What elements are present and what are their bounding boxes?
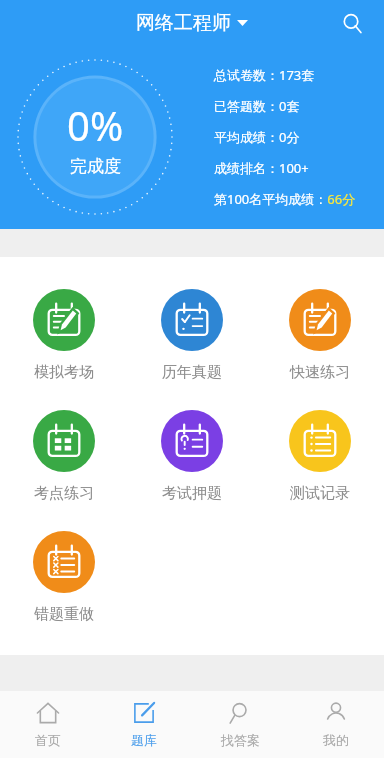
staticText: 平均成绩：0分 <box>214 128 300 146</box>
button[interactable]: 找答案 <box>192 691 288 758</box>
button[interactable]: 快速练习 <box>285 287 355 384</box>
button[interactable]: 测试记录 <box>285 408 355 505</box>
button[interactable]: 网络工程师 <box>136 11 248 35</box>
button[interactable]: 考试押题 <box>157 408 227 505</box>
staticText: 成绩排名：100+ <box>214 159 309 177</box>
staticText: 总试卷数：173套 <box>214 66 315 84</box>
staticText: 0% <box>67 98 124 152</box>
button[interactable]: 首页 <box>0 691 96 758</box>
button[interactable]: 考点练习 <box>29 408 99 505</box>
button[interactable]: 题库 <box>96 691 192 758</box>
staticText: 考试押题 <box>162 484 222 503</box>
staticText: 考点练习 <box>34 484 94 503</box>
staticText: 题库 <box>131 732 157 748</box>
button[interactable]: 错题重做 <box>29 529 99 626</box>
staticText: 网络工程师 <box>136 11 231 35</box>
staticText: 历年真题 <box>162 363 222 382</box>
staticText: 我的 <box>323 732 349 748</box>
staticText: 首页 <box>35 732 61 748</box>
button[interactable]: Search <box>332 3 372 43</box>
staticText: 错题重做 <box>34 605 94 624</box>
staticText: 模拟考场 <box>34 363 94 382</box>
button[interactable]: 模拟考场 <box>29 287 99 384</box>
staticText: 已答题数：0套 <box>214 97 300 115</box>
staticText: 第100名平均成绩：66分 <box>214 190 356 208</box>
staticText: 完成度 <box>70 156 121 177</box>
button[interactable]: 我的 <box>288 691 384 758</box>
button[interactable]: 历年真题 <box>157 287 227 384</box>
staticText: 测试记录 <box>290 484 350 503</box>
staticText: 找答案 <box>221 732 260 748</box>
staticText: 快速练习 <box>290 363 350 382</box>
